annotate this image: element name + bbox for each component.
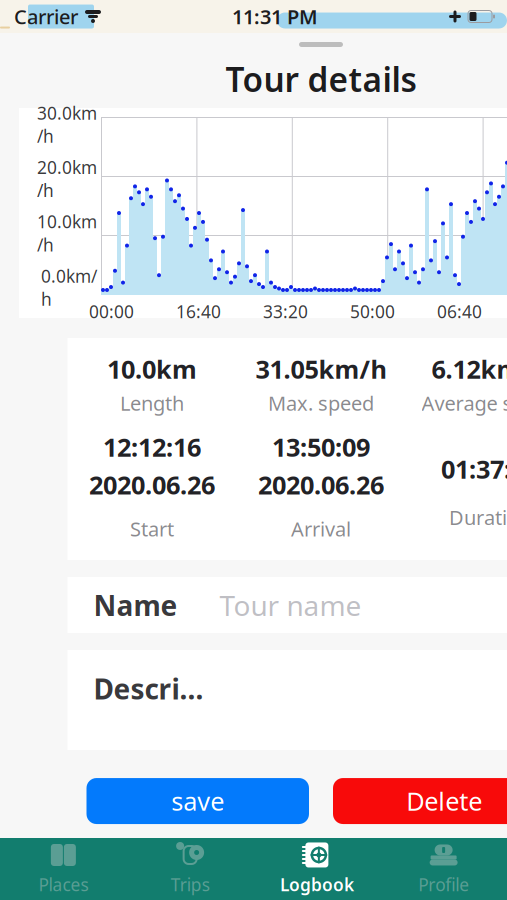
- button[interactable]: Logbook: [253, 838, 380, 900]
- button[interactable]: Delete: [333, 778, 507, 824]
- staticText: 10.0km: [107, 352, 197, 386]
- staticText: Arrival: [291, 515, 351, 542]
- staticText: [78, 1, 84, 31]
- staticText: Places: [38, 873, 88, 896]
- staticText: 00:00: [89, 300, 134, 323]
- button[interactable]: Descri...: [67, 650, 507, 750]
- staticText: Average speed: [421, 390, 507, 416]
- staticText: 12:12:16: [103, 430, 201, 464]
- staticText: Duration: [449, 504, 507, 530]
- staticText: save: [171, 784, 224, 818]
- staticText: Logbook: [280, 873, 354, 896]
- staticText: Max. speed: [268, 390, 374, 416]
- staticText: Trips: [171, 873, 210, 896]
- button[interactable]: Name: [67, 577, 507, 633]
- staticText: 2020.06.26: [258, 468, 384, 501]
- staticText: 30.0km/h: [37, 101, 97, 147]
- staticText: Length: [120, 390, 184, 416]
- staticText: Tour name: [219, 586, 361, 624]
- staticText: 0.0km/h: [41, 264, 97, 310]
- staticText: Descri...: [93, 670, 203, 707]
- staticText: 11:31 PM: [232, 3, 318, 30]
- staticText: 10.0km/h: [37, 210, 97, 256]
- staticText: Tour details: [225, 57, 416, 101]
- staticText: 31.05km/h: [255, 352, 386, 386]
- staticText: 01:37:52: [441, 452, 507, 486]
- staticText: 06:40: [437, 300, 482, 323]
- staticText: Delete: [406, 784, 482, 818]
- staticText: 2020.06.26: [89, 468, 215, 501]
- staticText: 20.0km/h: [37, 156, 97, 202]
- button[interactable]: Places: [0, 838, 127, 900]
- staticText: Profile: [418, 873, 469, 896]
- button[interactable]: save: [86, 778, 309, 824]
- staticText: Carrier: [14, 3, 78, 30]
- staticText: 50:00: [350, 300, 395, 323]
- button[interactable]: Profile: [380, 838, 507, 900]
- button[interactable]: Trips: [127, 838, 254, 900]
- staticText: Name: [93, 586, 177, 624]
- staticText: 13:50:09: [272, 430, 370, 464]
- staticText: 6.12km/h: [431, 352, 507, 386]
- staticText: 16:40: [176, 300, 221, 323]
- staticText: 33:20: [263, 300, 308, 323]
- staticText: Start: [130, 515, 174, 542]
